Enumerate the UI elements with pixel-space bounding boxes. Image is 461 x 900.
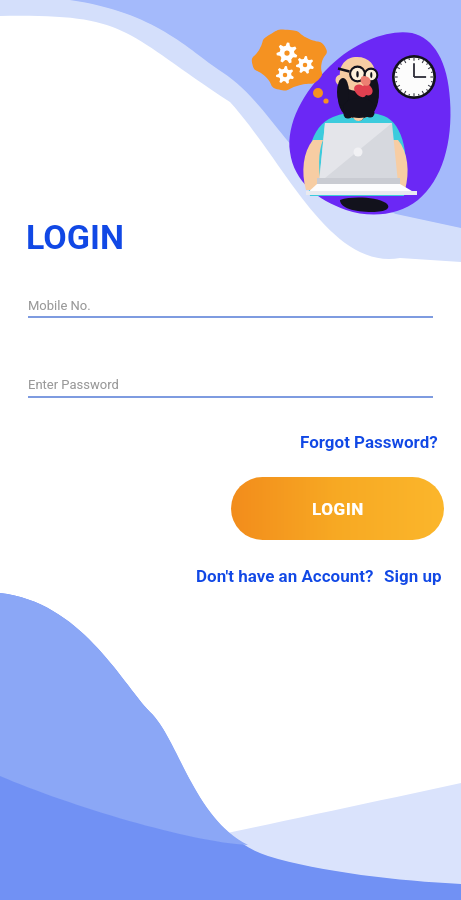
staticText: LOGIN — [312, 499, 364, 519]
staticText: Forgot Password? — [300, 432, 438, 452]
button[interactable]: LOGIN — [231, 477, 444, 540]
staticText: Don't have an Account? — [196, 566, 374, 586]
button[interactable]: Mobile No. — [28, 298, 433, 320]
button[interactable]: Forgot Password? — [300, 432, 438, 452]
staticText: Sign up — [384, 566, 442, 586]
button[interactable]: Enter Password — [28, 377, 433, 399]
staticText: Mobile No. — [28, 298, 91, 313]
staticText: Enter Password — [28, 377, 119, 392]
button[interactable]: Sign up — [384, 566, 442, 586]
staticText: LOGIN — [26, 217, 124, 257]
